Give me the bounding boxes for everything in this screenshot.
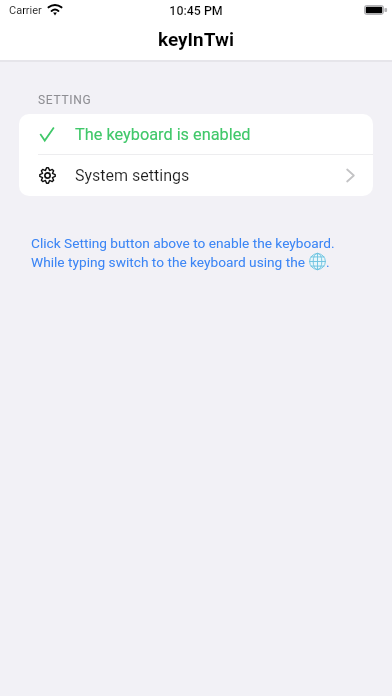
staticText: . [326, 254, 330, 270]
staticText: SETTING [38, 93, 92, 107]
staticText: 10:45 PM [0, 3, 392, 18]
other: System settings [346, 169, 355, 182]
staticText: While typing switch to the keyboard usin… [31, 254, 309, 270]
button[interactable]: The keyboard is enabled [19, 114, 373, 154]
staticText: System settings [75, 166, 190, 185]
button[interactable]: System settings [19, 154, 373, 196]
staticText: Click Setting button above to enable the… [31, 235, 335, 251]
staticText: The keyboard is enabled [75, 125, 251, 144]
staticText: keyInTwi [0, 28, 392, 50]
staticText: Carrier [9, 4, 42, 17]
